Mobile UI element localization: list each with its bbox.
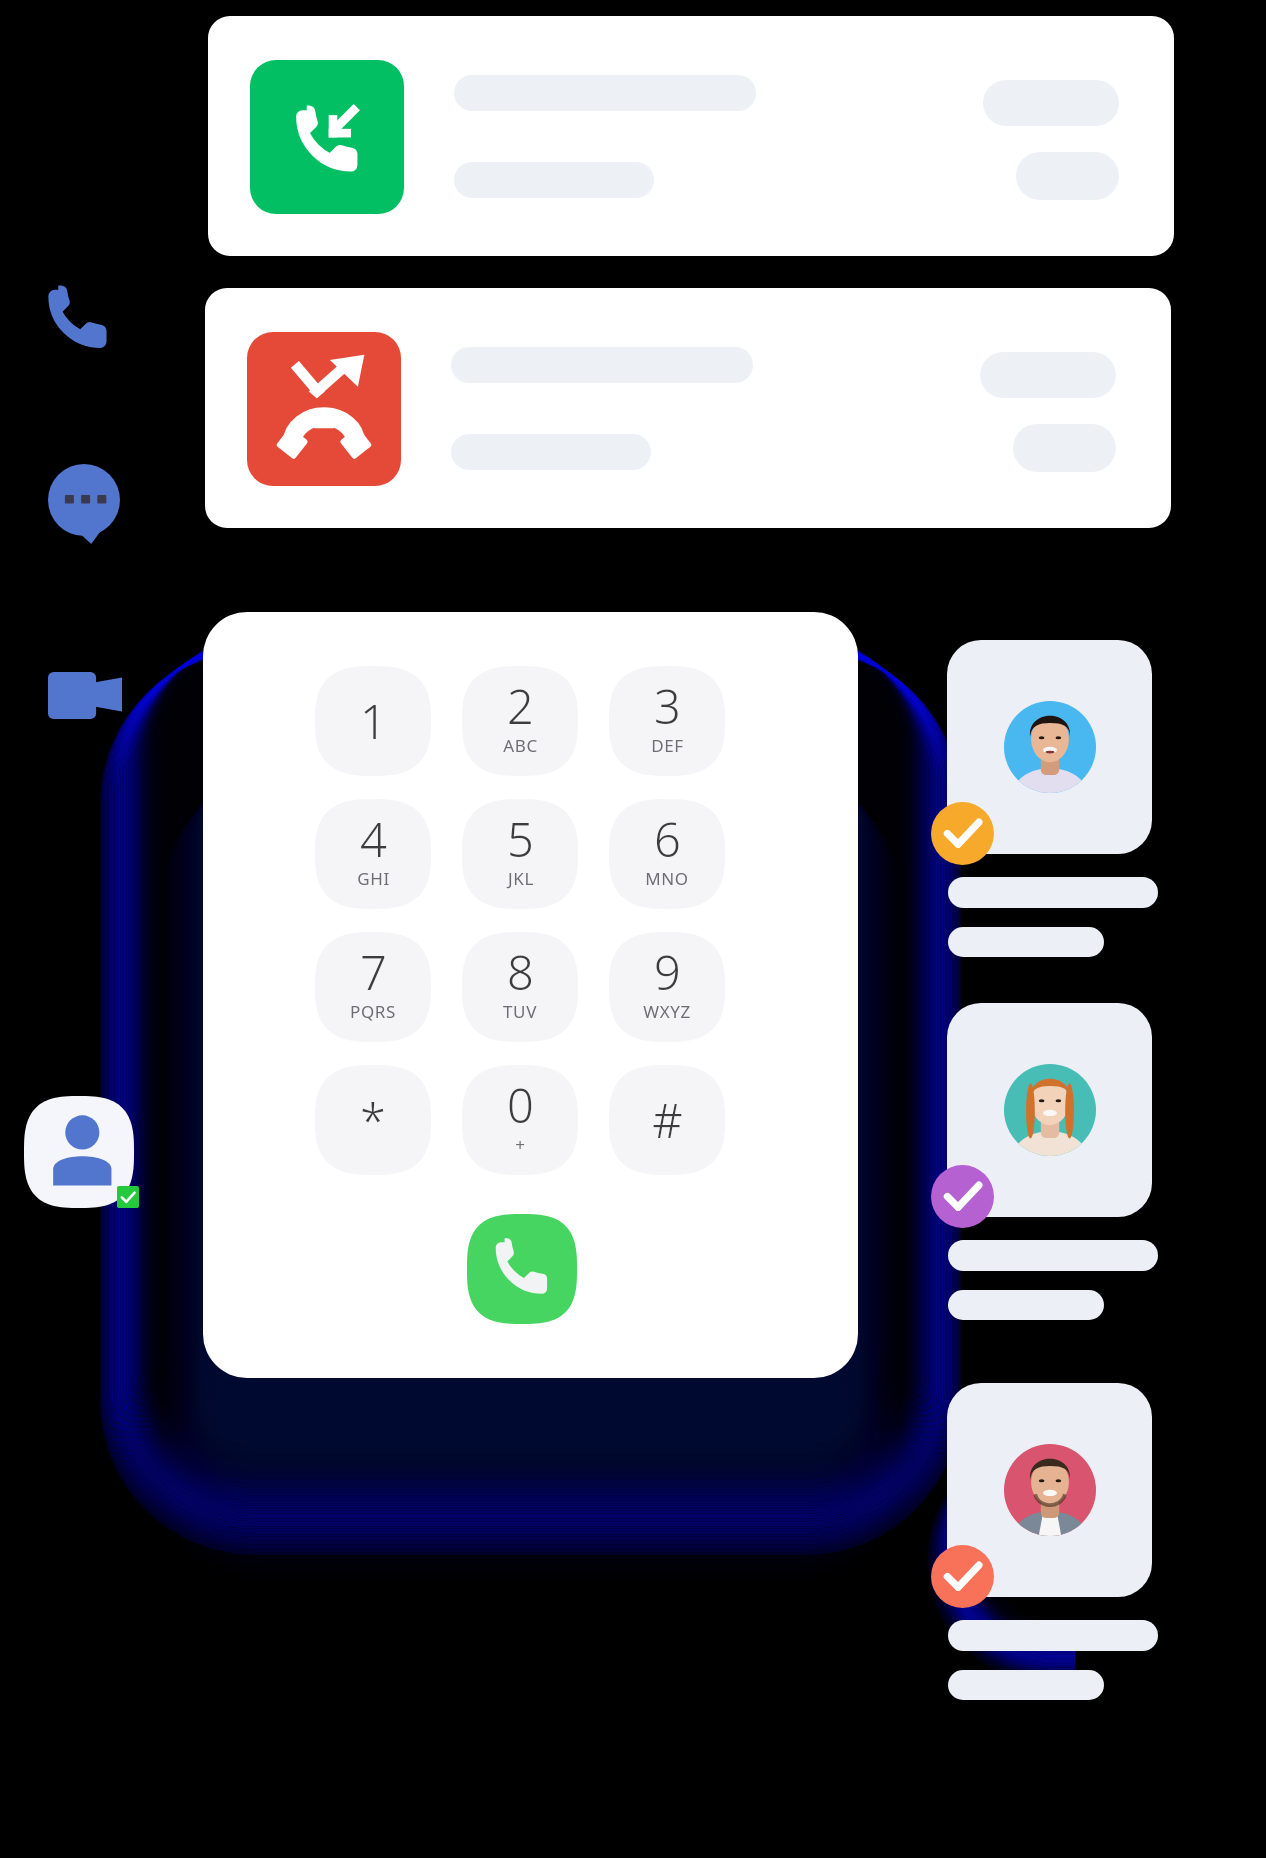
button[interactable]: Incoming call [208,16,1174,256]
button[interactable]: 8 [462,932,578,1042]
staticText: ABC [503,734,538,757]
button[interactable]: Call [467,1214,577,1324]
button[interactable]: 4 [315,799,431,909]
staticText: 4 [360,807,387,871]
button[interactable]: 5 [462,799,578,909]
button[interactable] [947,640,1152,854]
button[interactable]: * [315,1065,431,1175]
button[interactable]: Messages [48,464,120,544]
staticText: 0 [507,1073,534,1137]
button[interactable]: Verified contact [931,802,994,865]
button[interactable]: 6 [609,799,725,909]
button[interactable]: Verified contact [931,1545,994,1608]
staticText: 5 [507,807,534,871]
staticText: + [515,1133,526,1156]
button[interactable]: 2 [462,666,578,776]
button[interactable]: 1 [315,666,431,776]
button[interactable]: 9 [609,932,725,1042]
button[interactable]: 3 [609,666,725,776]
staticText: JKL [508,867,534,890]
button[interactable]: Contacts [24,1096,134,1208]
button[interactable]: # [609,1065,725,1175]
staticText: DEF [651,734,684,757]
button[interactable] [947,1383,1152,1597]
other: Missed call [247,332,401,486]
staticText: 6 [654,807,681,871]
button[interactable]: Video call [48,672,122,719]
staticText: 7 [360,940,387,1004]
staticText: GHI [357,867,390,890]
staticText: 2 [507,674,534,738]
other: Verified [117,1186,139,1208]
staticText: 3 [654,674,681,738]
staticText: 1 [360,689,387,753]
button[interactable] [947,1003,1152,1217]
staticText: 9 [654,940,681,1004]
button[interactable]: 7 [315,932,431,1042]
staticText: TUV [503,1000,537,1023]
staticText: 8 [507,940,534,1004]
staticText: PQRS [350,1000,396,1023]
staticText: # [652,1088,683,1152]
other: Incoming call [250,60,404,214]
staticText: WXYZ [643,1000,691,1023]
staticText: MNO [645,867,689,890]
staticText: * [360,1088,386,1152]
button[interactable]: Missed call [205,288,1171,528]
button[interactable]: Phone [48,288,120,352]
button[interactable]: 0 [462,1065,578,1175]
button[interactable]: Verified contact [931,1165,994,1228]
